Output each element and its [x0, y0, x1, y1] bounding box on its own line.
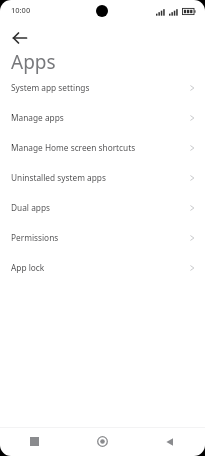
- staticText: Manage Home screen shortcuts: [11, 142, 136, 153]
- button[interactable]: System app settings: [0, 82, 205, 112]
- button[interactable]: Dual apps: [0, 202, 205, 232]
- staticText: Uninstalled system apps: [11, 172, 106, 183]
- staticText: Apps: [11, 49, 56, 75]
- button[interactable]: Manage apps: [0, 112, 205, 142]
- button[interactable]: Permissions: [0, 232, 205, 262]
- staticText: System app settings: [11, 82, 90, 93]
- button[interactable]: Uninstalled system apps: [0, 172, 205, 202]
- button[interactable]: Back: [136, 427, 204, 456]
- button[interactable]: Back: [6, 24, 34, 52]
- button[interactable]: Recent apps: [0, 427, 68, 456]
- staticText: Dual apps: [11, 202, 50, 213]
- staticText: 10:00: [11, 5, 31, 15]
- staticText: App lock: [11, 262, 45, 273]
- button[interactable]: Manage Home screen shortcuts: [0, 142, 205, 172]
- button[interactable]: Home: [68, 427, 136, 456]
- staticText: Manage apps: [11, 112, 64, 123]
- staticText: Permissions: [11, 232, 59, 243]
- button[interactable]: App lock: [0, 262, 205, 292]
